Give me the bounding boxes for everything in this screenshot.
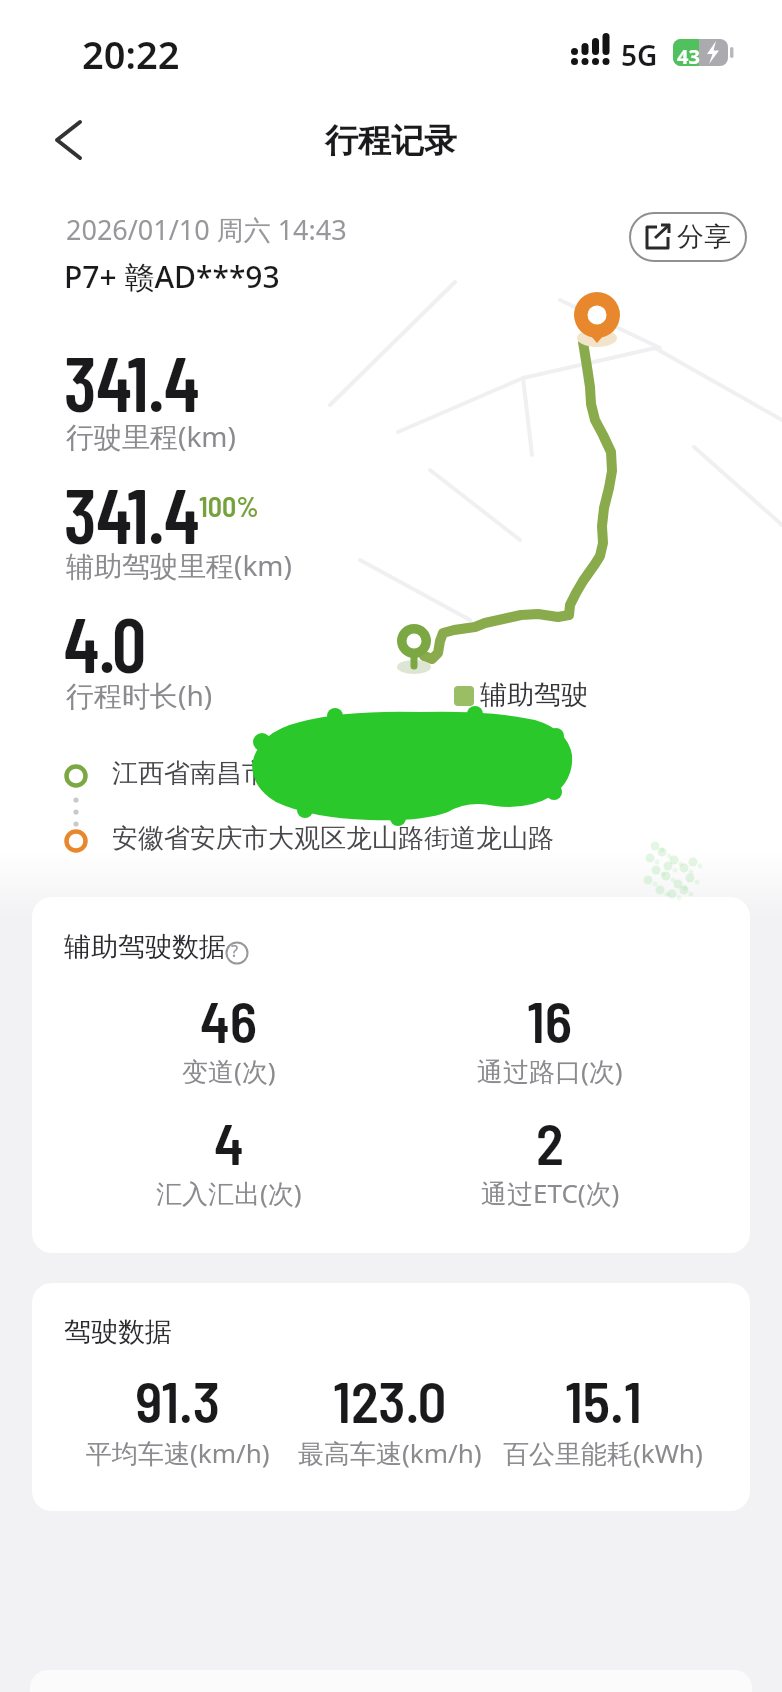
staticText: P7+ 赣AD***93 — [64, 256, 280, 297]
staticText: 2026/01/10 周六 14:43 — [66, 211, 347, 248]
staticText: ? — [231, 940, 239, 962]
staticText: 16 — [527, 986, 573, 1054]
staticText: 46 — [200, 986, 258, 1054]
staticText: 15.1 — [565, 1366, 642, 1434]
staticText: 安徽省安庆市大观区龙山路街道龙山路 — [112, 822, 554, 855]
staticText: 行驶里程(km) — [66, 417, 236, 455]
staticText: 平均车速(km/h) — [86, 1435, 270, 1471]
staticText: 辅助驾驶 — [480, 678, 588, 712]
staticText: 驾驶数据 — [64, 1315, 172, 1349]
staticText: 通过路口(次) — [477, 1053, 623, 1089]
staticText: 通过ETC(次) — [481, 1175, 620, 1211]
staticText: 2 — [536, 1108, 564, 1176]
staticText: 20:22 — [82, 28, 180, 80]
staticText: 最高车速(km/h) — [298, 1435, 482, 1471]
staticText: 341.4 — [64, 468, 200, 559]
staticText: 5G — [621, 36, 658, 74]
button[interactable]: 分享 — [629, 212, 747, 262]
staticText: 行程时长(h) — [66, 676, 213, 714]
staticText: 变道(次) — [182, 1053, 276, 1089]
button[interactable] — [40, 112, 96, 168]
staticText: 341.4 — [64, 336, 200, 427]
staticText: 辅助驾驶里程(km) — [66, 546, 292, 584]
staticText: 123.0 — [333, 1366, 447, 1434]
staticText: 百公里能耗(kWh) — [503, 1435, 703, 1471]
staticText: 4 — [214, 1108, 244, 1176]
button[interactable] — [222, 938, 252, 968]
staticText: 100% — [199, 489, 259, 523]
staticText: 分享 — [677, 220, 731, 254]
staticText: 行程记录 — [325, 120, 457, 162]
staticText: 43 — [677, 43, 700, 70]
staticText: 辅助驾驶数据 — [64, 930, 226, 964]
staticText: 4.0 — [64, 597, 147, 688]
staticText: 江西省南昌市南昌县莲塘镇澄湖东路 — [112, 757, 528, 790]
staticText: 91.3 — [135, 1366, 221, 1434]
staticText: 汇入汇出(次) — [156, 1175, 302, 1211]
